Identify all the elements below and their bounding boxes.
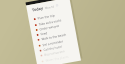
button[interactable]: Buy sunscreen (40, 48, 65, 58)
staticText: Buy sunscreen (44, 49, 65, 57)
staticText: Mon 14 (44, 4, 55, 10)
button[interactable]: Call the hotel (39, 44, 62, 53)
staticText: Water the plants (45, 54, 69, 63)
button[interactable]: Water the plants (41, 54, 69, 64)
button[interactable]: Take extra socks (34, 17, 62, 27)
button[interactable]: Set a reminder (38, 38, 64, 48)
staticText: Feed (40, 31, 48, 36)
button[interactable]: Profile (55, 4, 59, 7)
staticText: Walk to the beach (41, 32, 67, 41)
staticText: Today (31, 5, 44, 12)
staticText: Plan the trip (37, 13, 56, 21)
staticText: Set a reminder (42, 39, 64, 47)
staticText: Take extra socks (38, 18, 62, 26)
staticText: Call the hotel (43, 45, 62, 52)
button[interactable]: Feed (36, 30, 48, 37)
button[interactable]: Walk to the beach (37, 32, 67, 42)
button[interactable]: Order wet pet (35, 23, 60, 32)
button[interactable]: Plan the trip (33, 12, 56, 21)
staticText: Order wet pet (39, 24, 60, 31)
